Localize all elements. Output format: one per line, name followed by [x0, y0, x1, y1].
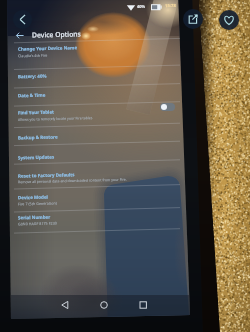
button[interactable]: Back [13, 10, 32, 29]
button[interactable]: Favorite [219, 10, 239, 30]
staticText: Reset to Factory Defaults [18, 171, 75, 179]
staticText: Battery: 40% [18, 73, 47, 79]
staticText: Serial Number [18, 214, 51, 220]
staticText: System Updates [18, 153, 55, 160]
staticText: Date & Time [18, 92, 46, 98]
staticText: Remove all personal data and downloaded … [18, 177, 127, 184]
button[interactable]: Find Your Tablet toggle [160, 103, 175, 111]
staticText: Device Options [32, 29, 81, 40]
staticText: Allows you to remotely locate your Fire … [18, 115, 93, 122]
staticText: Backup & Restore [18, 133, 58, 140]
staticText: Change Your Device Name [18, 44, 78, 52]
staticText: Find Your Tablet [18, 108, 55, 115]
staticText: Claudia's 4th Fire [18, 53, 48, 58]
staticText: 15:78 [165, 3, 176, 9]
button[interactable]: Share [183, 9, 203, 29]
staticText: G0N0 HAGF 8175 F230 [18, 220, 57, 226]
staticText: 40% [137, 4, 146, 9]
staticText: Fire 7 (5th Generation) [18, 200, 57, 206]
staticText: Device Model [18, 194, 48, 200]
